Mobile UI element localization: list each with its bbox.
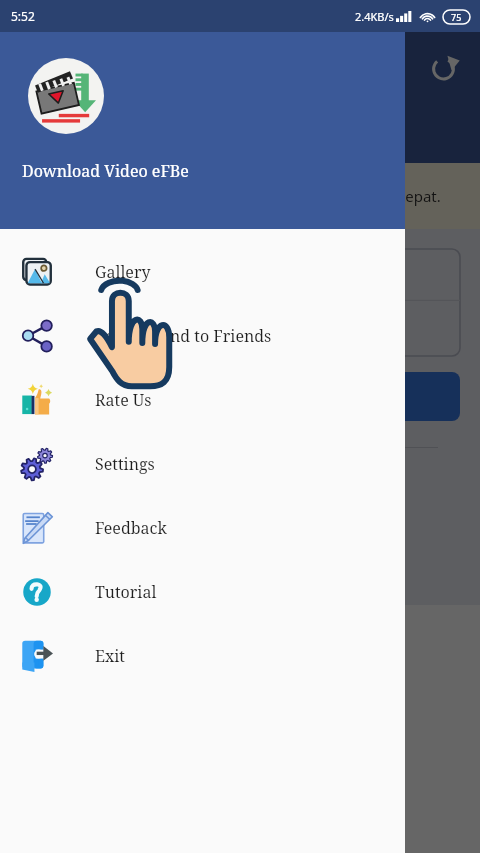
- staticText: Download Video eFBe: [22, 160, 189, 182]
- button[interactable]: Close navigation drawer: [0, 0, 480, 853]
- button[interactable]: Gallery: [0, 240, 405, 304]
- staticText: Recommend to Friends: [95, 325, 272, 347]
- staticText: Exit: [95, 645, 125, 667]
- button[interactable]: App logo: [0, 0, 405, 229]
- staticText: Rate Us: [95, 389, 152, 411]
- other: App logo: [28, 58, 104, 134]
- button[interactable]: Recommend to Friends: [0, 304, 405, 368]
- button[interactable]: Rate Us: [0, 368, 405, 432]
- button[interactable]: Exit: [0, 624, 405, 688]
- staticText: Tempel tautan video di kolom bawah untuk…: [39, 186, 441, 206]
- staticText: 2.4KB/s: [355, 9, 394, 24]
- staticText: 75: [451, 11, 462, 23]
- button[interactable]: Refresh: [430, 54, 460, 84]
- staticText: Feedback: [95, 517, 167, 539]
- staticText: Settings: [95, 453, 155, 475]
- button[interactable]: Settings: [0, 432, 405, 496]
- button[interactable]: Tutorial: [0, 560, 405, 624]
- staticText: 5:52: [11, 8, 35, 24]
- button[interactable]: [20, 372, 460, 421]
- staticText: Tutorial: [95, 581, 157, 603]
- staticText: Gallery: [95, 261, 151, 283]
- button[interactable]: Feedback: [0, 496, 405, 560]
